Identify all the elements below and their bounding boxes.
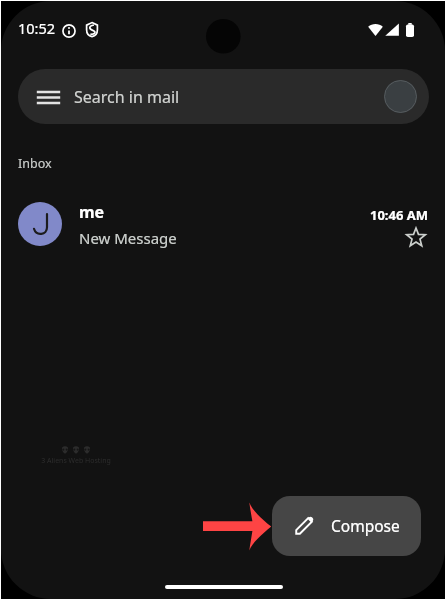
button[interactable]: Open navigation drawer — [18, 69, 429, 124]
staticText: 10:52 — [18, 18, 56, 38]
staticText: Inbox — [18, 155, 52, 172]
staticText: Compose — [331, 515, 400, 536]
staticText: New Message — [79, 228, 177, 248]
button[interactable]: Open navigation drawer — [35, 84, 61, 110]
button[interactable]: Account profile — [384, 80, 417, 113]
staticText: 10:46 AM — [370, 206, 429, 224]
staticText: 3 Aliens Web Hosting — [41, 456, 111, 466]
staticText: Search in mail — [74, 86, 180, 108]
button[interactable]: Star message — [405, 226, 427, 248]
staticText: me — [79, 201, 105, 223]
button[interactable]: Compose — [272, 496, 421, 556]
button[interactable]: me — [1, 200, 445, 258]
